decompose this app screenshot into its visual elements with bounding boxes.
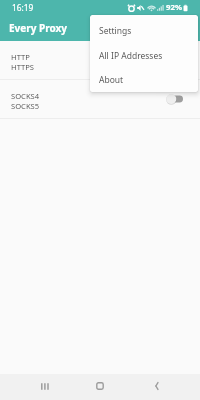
button[interactable]: Toggle SOCKS4 proxy: [166, 92, 184, 106]
staticText: Every Proxy: [9, 21, 68, 35]
staticText: HTTP HTTPS: [11, 52, 34, 72]
staticText: 16:19: [12, 2, 34, 13]
staticText: Settings: [99, 25, 132, 37]
staticText: SOCKS4 SOCKS5: [11, 91, 40, 111]
staticText: All IP Addresses: [99, 50, 163, 62]
button[interactable]: Back: [143, 374, 171, 400]
staticText: About: [99, 74, 124, 86]
button[interactable]: About: [90, 68, 198, 92]
button[interactable]: SOCKS4 SOCKS5: [0, 80, 200, 118]
staticText: 92%: [166, 2, 182, 13]
button[interactable]: All IP Addresses: [90, 43, 198, 68]
button[interactable]: More options: [176, 16, 200, 40]
button[interactable]: Home: [86, 374, 114, 400]
button[interactable]: HTTP HTTPS: [0, 41, 200, 79]
button[interactable]: Recent apps: [31, 374, 59, 400]
button[interactable]: Settings: [90, 18, 198, 43]
